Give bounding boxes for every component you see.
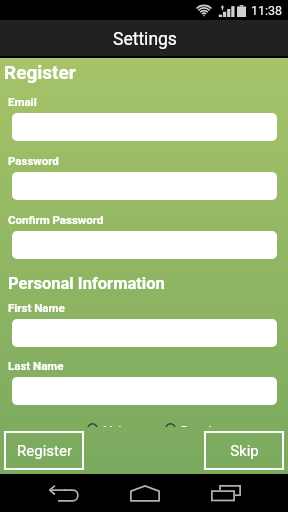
staticText: Male — [103, 424, 128, 437]
staticText: Female — [181, 424, 217, 437]
staticText: Register — [4, 61, 76, 83]
button[interactable]: Male — [87, 422, 128, 435]
staticText: Personal Information — [8, 274, 165, 293]
button[interactable]: Recents — [190, 474, 262, 512]
staticText: Password — [8, 154, 59, 167]
button[interactable]: Home — [109, 474, 181, 512]
button[interactable] — [12, 113, 277, 141]
staticText: Email — [8, 95, 37, 108]
button[interactable] — [12, 319, 277, 347]
button[interactable] — [12, 377, 277, 405]
button[interactable]: Back — [28, 474, 100, 512]
staticText: Settings — [113, 29, 177, 50]
button[interactable] — [12, 172, 277, 200]
staticText: Last Name — [8, 359, 64, 372]
button[interactable]: Register — [4, 431, 84, 470]
staticText: Confirm Password — [8, 213, 104, 226]
staticText: First Name — [8, 301, 65, 314]
button[interactable]: Female — [165, 422, 217, 435]
staticText: Skip — [230, 442, 259, 460]
button[interactable] — [12, 231, 277, 259]
staticText: Register — [17, 442, 72, 460]
staticText: 11:38 — [251, 3, 283, 18]
button[interactable]: Skip — [204, 431, 284, 470]
